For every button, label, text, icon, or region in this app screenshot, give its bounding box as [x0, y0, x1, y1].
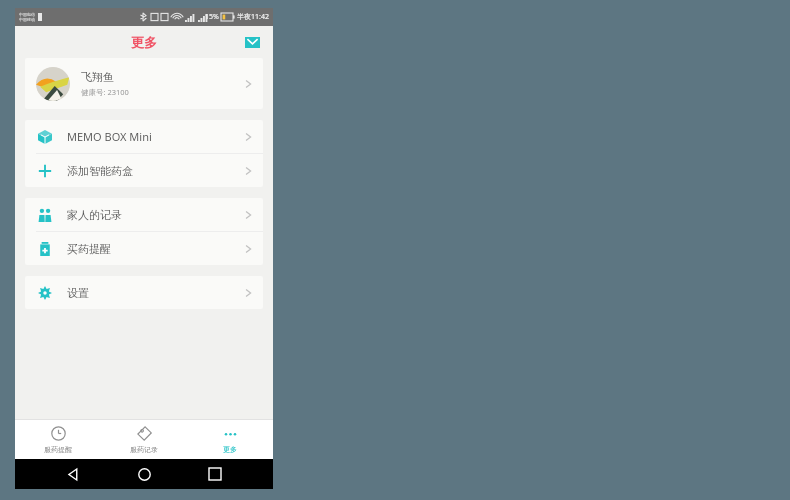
staticText: 服药提醒 [44, 445, 72, 454]
button[interactable]: Home [131, 461, 157, 487]
button[interactable]: Messages [241, 31, 263, 53]
staticText: 中国移动 [19, 17, 35, 22]
button[interactable]: 家人的记录 [25, 198, 263, 231]
button[interactable]: 更多 [187, 420, 273, 459]
staticText: 健康号: 23100 [81, 87, 129, 97]
button[interactable]: 服药记录 [101, 420, 187, 459]
button[interactable]: 添加智能药盒 [25, 154, 263, 187]
button[interactable]: MEMO BOX Mini [25, 120, 263, 153]
staticText: 设置 [67, 286, 89, 300]
staticText: 中国电信 [19, 12, 35, 17]
button[interactable]: Recents [202, 461, 228, 487]
button[interactable]: 飞翔鱼 [25, 58, 263, 109]
staticText: 添加智能药盒 [67, 164, 133, 178]
button[interactable]: 设置 [25, 276, 263, 309]
staticText: 更多 [131, 34, 157, 50]
staticText: 服药记录 [130, 445, 158, 454]
staticText: 15% [205, 12, 219, 22]
staticText: 半夜11:42 [237, 12, 269, 22]
button[interactable]: 买药提醒 [25, 232, 263, 265]
staticText: 买药提醒 [67, 242, 111, 256]
button[interactable]: Back [60, 461, 86, 487]
staticText: 飞翔鱼 [81, 70, 114, 84]
button[interactable]: 服药提醒 [15, 420, 101, 459]
staticText: 家人的记录 [67, 208, 122, 222]
staticText: MEMO BOX Mini [67, 129, 152, 144]
staticText: 更多 [223, 445, 237, 454]
